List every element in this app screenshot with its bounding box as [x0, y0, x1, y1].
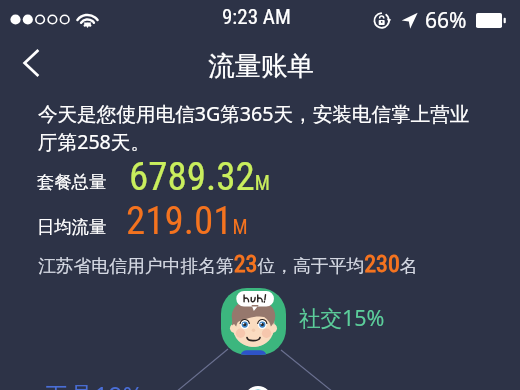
staticText: 6789.32M — [129, 154, 270, 196]
button[interactable]: 工具19% — [40, 374, 158, 390]
staticText: 工具19% — [44, 378, 144, 390]
staticText: 今天是您使用电信3G第365天，安装电信掌上营业厅第258天。 — [38, 100, 486, 155]
staticText: 66% — [425, 6, 467, 35]
staticText: 套餐总量 — [37, 171, 107, 193]
staticText: 日均流量 — [37, 216, 107, 238]
staticText: 9:23 AM — [222, 5, 291, 30]
button[interactable]: 日均流量 — [20, 200, 490, 242]
staticText: 江苏省电信用户中排名第23位，高于平均230名 — [38, 250, 418, 278]
button[interactable]: 社交15% — [295, 300, 387, 334]
staticText: 219.01M — [126, 198, 248, 240]
staticText: 流量账单 — [208, 49, 314, 82]
button[interactable]: 社交 用户头像 — [221, 288, 286, 355]
button[interactable]: Back — [6, 38, 56, 88]
button[interactable]: 套餐总量 — [20, 156, 490, 198]
staticText: 社交15% — [299, 303, 385, 332]
